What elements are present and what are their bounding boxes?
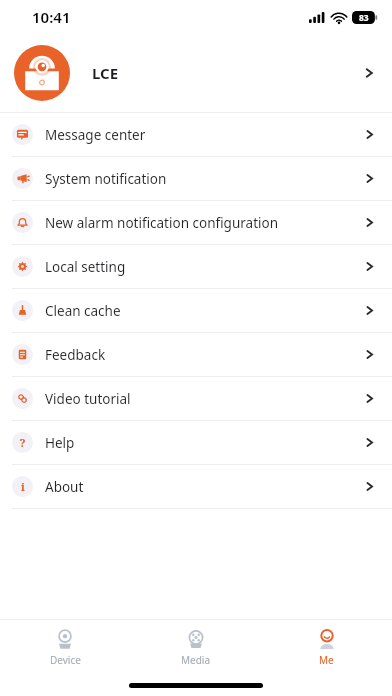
staticText: New alarm notification configuration [45, 214, 363, 232]
staticText: Me [319, 653, 334, 667]
button[interactable]: Video tutorial [0, 377, 392, 420]
staticText: Local setting [45, 258, 363, 276]
button[interactable]: ? [0, 421, 392, 464]
staticText: LCE [92, 63, 362, 83]
staticText: About [45, 478, 363, 496]
staticText: Help [45, 434, 363, 452]
button[interactable]: Media [130, 620, 261, 674]
button[interactable]: i [0, 465, 392, 508]
staticText: ? [19, 435, 26, 450]
staticText: System notification [45, 170, 363, 188]
staticText: i [21, 479, 25, 494]
staticText: Video tutorial [45, 390, 363, 408]
button[interactable]: System notification [0, 157, 392, 200]
staticText: Device [50, 653, 81, 667]
staticText: Media [181, 653, 211, 667]
button[interactable]: Device [0, 620, 130, 674]
button[interactable]: New alarm notification configuration [0, 201, 392, 244]
staticText: 10:41 [32, 7, 71, 27]
button[interactable]: Me [261, 620, 392, 674]
staticText: Clean cache [45, 302, 363, 320]
button[interactable]: Message center [0, 113, 392, 156]
staticText: Feedback [45, 346, 363, 364]
staticText: 83 [359, 12, 369, 24]
button[interactable]: Local setting [0, 245, 392, 288]
staticText: Message center [45, 126, 363, 144]
button[interactable]: Feedback [0, 333, 392, 376]
button[interactable]: Clean cache [0, 289, 392, 332]
button[interactable]: LCE [0, 34, 392, 112]
